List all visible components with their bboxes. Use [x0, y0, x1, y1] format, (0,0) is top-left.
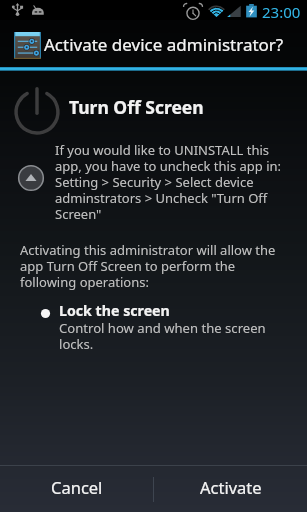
staticText: Turn Off Screen	[69, 95, 204, 119]
staticText: Activating this administrator will allow…	[20, 241, 288, 290]
staticText: Control how and when the screen locks.	[59, 319, 274, 352]
button[interactable]: Activate	[154, 466, 307, 512]
button[interactable]: Cancel	[0, 466, 153, 512]
staticText: Cancel	[51, 476, 103, 498]
staticText: Activate device administrator?	[44, 33, 284, 56]
button[interactable]: Collapse details	[17, 164, 45, 192]
staticText: Lock the screen	[59, 301, 170, 320]
staticText: Activate	[200, 476, 262, 498]
staticText: If you would like to UNINSTALL this app,…	[55, 141, 288, 222]
staticText: 23:00	[262, 2, 301, 22]
